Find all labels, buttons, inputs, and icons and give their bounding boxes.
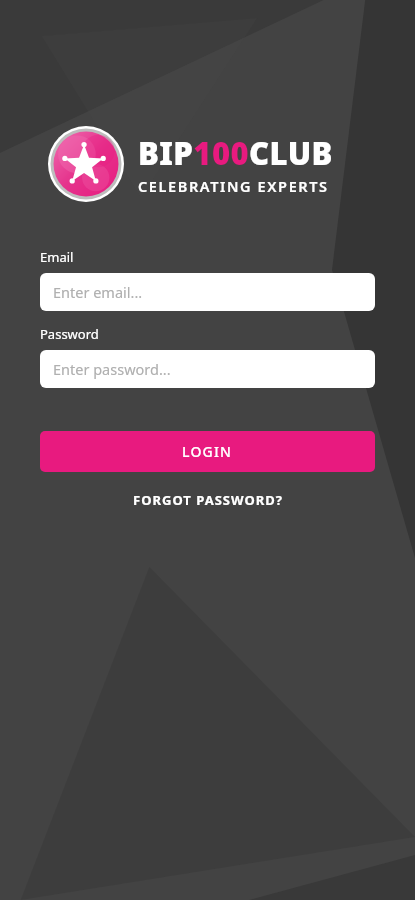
button[interactable]: Enter password... xyxy=(40,350,375,388)
button[interactable]: FORGOT PASSWORD? xyxy=(0,485,415,515)
other: BIP100 Club logo xyxy=(48,126,124,202)
staticText: CELEBRATING EXPERTS xyxy=(138,176,329,196)
button[interactable]: LOGIN xyxy=(40,431,375,472)
staticText: LOGIN xyxy=(182,442,233,461)
staticText: Enter password... xyxy=(53,359,171,379)
staticText: FORGOT PASSWORD? xyxy=(133,491,283,509)
staticText: Password xyxy=(40,325,99,343)
staticText: BIP100CLUB xyxy=(138,132,333,174)
staticText: Enter email... xyxy=(53,282,143,302)
button[interactable]: Enter email... xyxy=(40,273,375,311)
staticText: Email xyxy=(40,248,74,266)
